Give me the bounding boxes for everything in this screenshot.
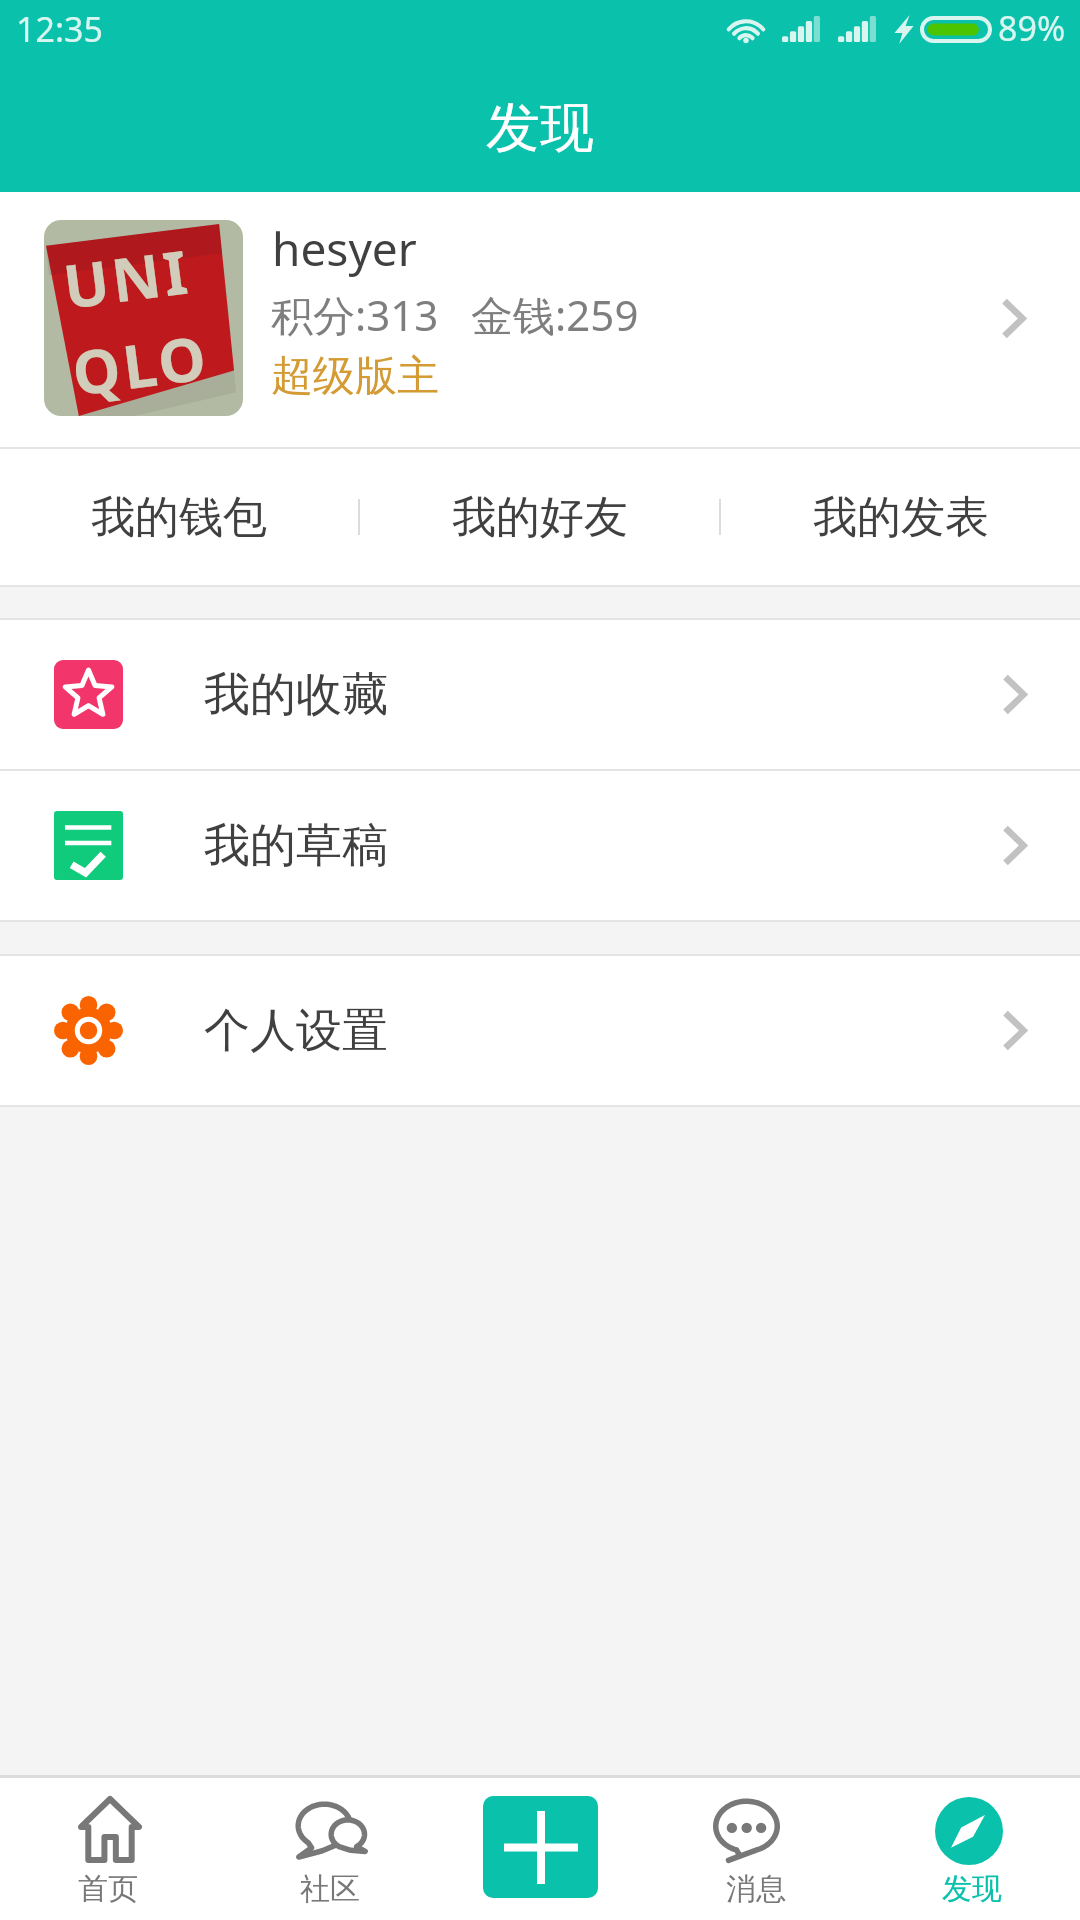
- button[interactable]: 社区: [216, 1778, 432, 1920]
- staticText: 我的发表: [813, 490, 989, 545]
- button[interactable]: 我的钱包: [0, 449, 358, 585]
- staticText: hesyer: [272, 217, 417, 280]
- button[interactable]: 消息: [648, 1778, 864, 1920]
- button[interactable]: 我的好友: [360, 449, 719, 585]
- staticText: 我的好友: [452, 490, 628, 545]
- staticText: UNI: [44, 225, 230, 331]
- staticText: 社区: [300, 1870, 360, 1908]
- button[interactable]: UNI: [0, 192, 1080, 447]
- staticText: 发现: [942, 1870, 1002, 1908]
- staticText: 消息: [726, 1870, 786, 1908]
- staticText: QLO: [44, 311, 243, 416]
- staticText: 我的收藏: [204, 666, 388, 724]
- staticText: 12:35: [16, 6, 103, 52]
- button[interactable]: 个人设置: [0, 956, 1080, 1105]
- staticText: 积分:313 金钱:259: [271, 286, 639, 343]
- staticText: 我的草稿: [204, 817, 388, 875]
- button[interactable]: 首页: [0, 1778, 216, 1920]
- button[interactable]: Create post: [483, 1796, 598, 1898]
- staticText: 首页: [78, 1870, 138, 1908]
- staticText: 89%: [998, 5, 1066, 51]
- button[interactable]: 我的收藏: [0, 620, 1080, 769]
- button[interactable]: 我的草稿: [0, 771, 1080, 920]
- staticText: 发现: [486, 94, 594, 162]
- staticText: 超级版主: [271, 350, 439, 403]
- button[interactable]: 发现: [864, 1778, 1080, 1920]
- button[interactable]: 我的发表: [721, 449, 1080, 585]
- staticText: 个人设置: [204, 1002, 388, 1060]
- staticText: 我的钱包: [91, 490, 267, 545]
